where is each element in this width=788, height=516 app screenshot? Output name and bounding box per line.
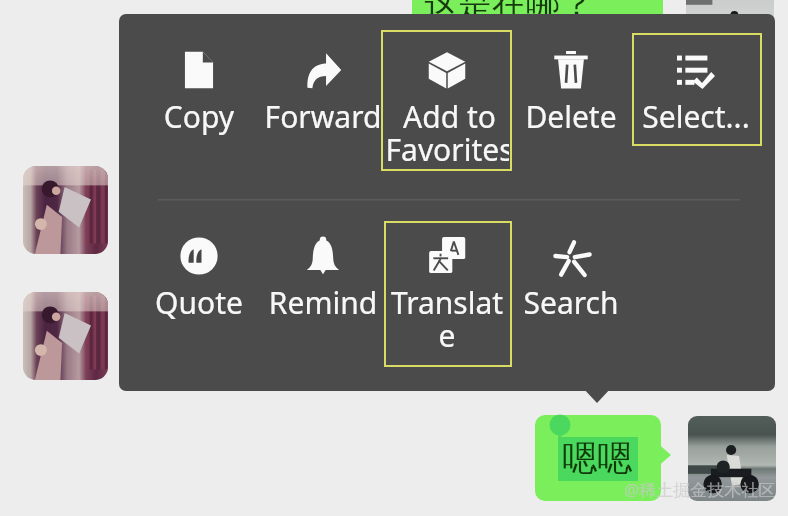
staticText: Quote <box>137 282 261 323</box>
button[interactable]: 嗯嗯 <box>535 415 671 501</box>
staticText: Select... <box>634 96 758 137</box>
button[interactable]: Forward <box>261 31 385 181</box>
button[interactable]: Remind <box>261 217 385 367</box>
button[interactable]: Translat e <box>385 217 509 367</box>
button[interactable]: 这是在哪？ <box>412 0 663 24</box>
button[interactable]: Search <box>509 217 633 367</box>
staticText: @稀土掘金技术社区 <box>624 478 776 501</box>
button[interactable] <box>688 416 776 501</box>
staticText: 这是在哪？ <box>424 0 594 24</box>
button[interactable]: Add to Favorites <box>385 31 509 181</box>
staticText: Translat e <box>385 282 509 356</box>
staticText: Forward <box>261 96 385 137</box>
staticText: Remind <box>261 282 385 323</box>
button[interactable]: Select... <box>634 31 758 181</box>
button[interactable]: Delete <box>509 31 633 181</box>
button[interactable] <box>23 292 108 380</box>
staticText: 嗯嗯 <box>562 436 632 480</box>
button[interactable]: Copy <box>137 31 261 181</box>
staticText: Add to Favorites <box>385 96 509 170</box>
button[interactable]: Quote <box>137 217 261 367</box>
staticText: Delete <box>509 96 633 137</box>
staticText: Search <box>509 282 633 323</box>
button[interactable] <box>23 166 108 254</box>
staticText: Copy <box>137 96 261 137</box>
